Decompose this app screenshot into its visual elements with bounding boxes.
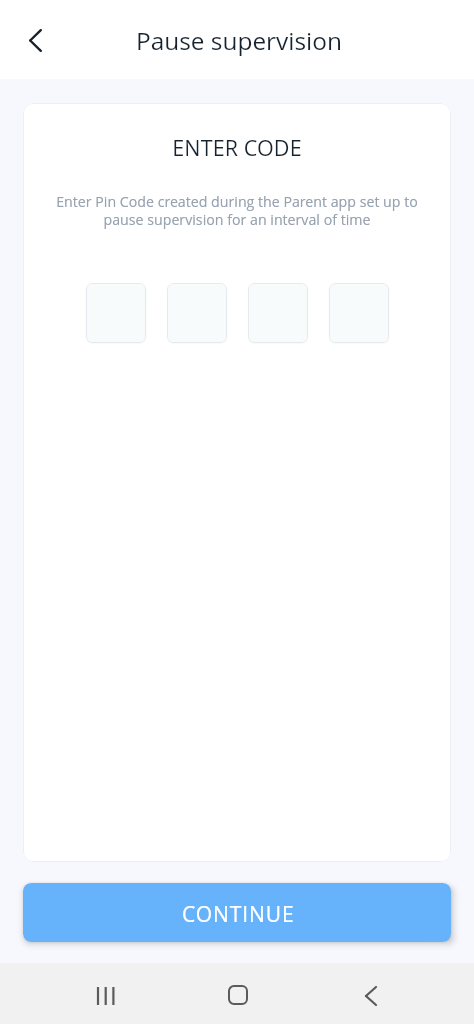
staticText: Enter Pin Code created during the Parent…	[52, 192, 422, 229]
button[interactable]: PIN digit	[86, 283, 146, 343]
button[interactable]: Back	[11, 16, 59, 64]
button[interactable]: Back	[347, 965, 395, 1024]
staticText: Pause supervision	[136, 24, 342, 57]
button[interactable]: PIN digit	[248, 283, 308, 343]
button[interactable]: Recent apps	[82, 965, 130, 1024]
staticText: CONTINUE	[182, 900, 295, 929]
button[interactable]: PIN digit	[167, 283, 227, 343]
button[interactable]: CONTINUE	[23, 883, 451, 942]
button[interactable]: PIN digit	[329, 283, 389, 343]
staticText: ENTER CODE	[172, 133, 302, 162]
button[interactable]: Home	[214, 964, 262, 1024]
